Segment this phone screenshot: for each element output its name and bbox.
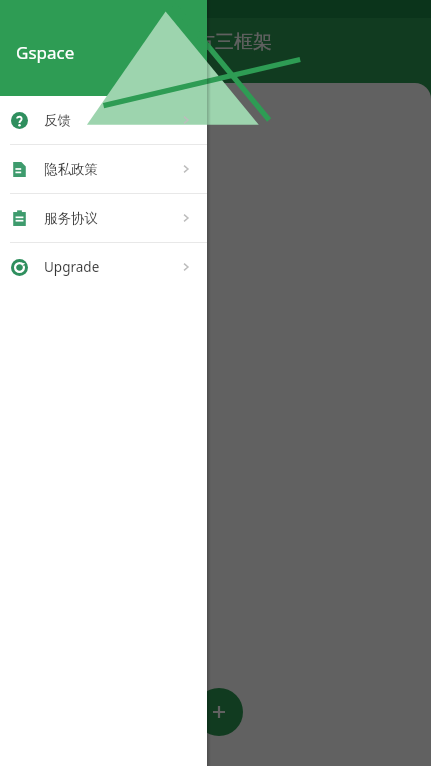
- button[interactable]: Add: [195, 688, 243, 736]
- button[interactable]: Upgrade: [0, 243, 207, 291]
- staticText: 反馈: [44, 112, 71, 129]
- button[interactable]: [207, 0, 431, 766]
- button[interactable]: 服务协议: [0, 194, 207, 242]
- staticText: 服务协议: [44, 210, 98, 227]
- staticText: Gspace: [16, 41, 75, 64]
- staticText: 隐私政策: [44, 161, 98, 178]
- button[interactable]: 隐私政策: [0, 145, 207, 193]
- staticText: 方三框架: [196, 30, 272, 54]
- button[interactable]: 反馈: [0, 96, 207, 144]
- staticText: Upgrade: [44, 258, 100, 276]
